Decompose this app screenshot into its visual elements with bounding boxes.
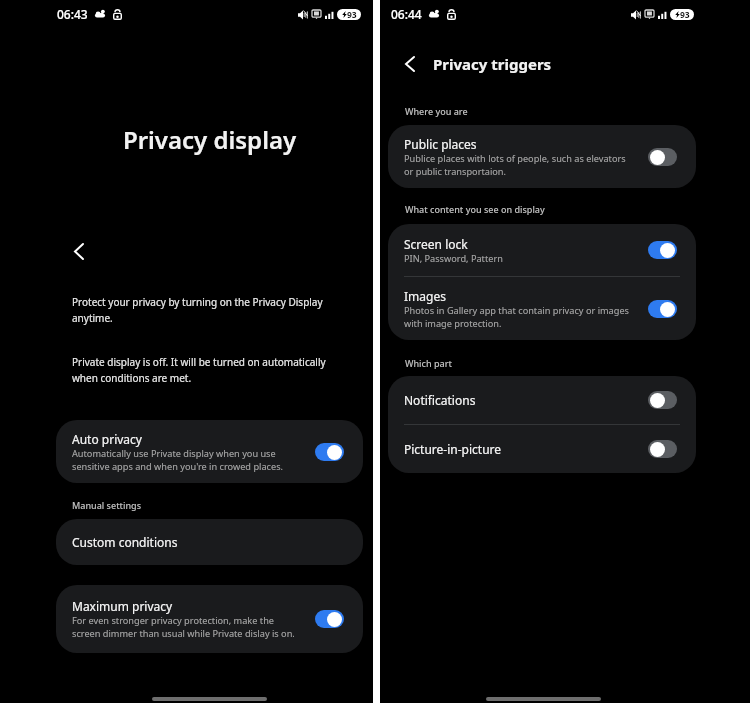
button[interactable]: Switch on [315,610,344,628]
button[interactable]: Screen lock [388,224,696,276]
staticText: 93 [347,9,357,20]
staticText: Publice places with lots of people, such… [404,152,630,178]
button[interactable]: Switch off [648,440,677,458]
staticText: Which part [405,357,452,369]
staticText: Auto privacy [72,431,142,447]
staticText: What content you see on display [405,203,545,215]
button[interactable]: Switch on [648,300,677,318]
staticText: Public places [404,136,477,152]
staticText: Notifications [404,392,476,408]
staticText: Privacy display [46,123,373,156]
staticText: Custom conditions [72,534,178,550]
staticText: Where you are [405,105,468,117]
button[interactable]: Back [67,239,91,263]
staticText: Automatically use Private display when y… [72,447,298,473]
button[interactable]: Back [398,52,422,76]
button[interactable]: Switch off [648,148,677,166]
button[interactable]: Notifications [388,376,696,424]
staticText: Manual settings [72,499,142,511]
button[interactable]: Picture-in-picture [388,425,696,473]
button[interactable]: Custom conditions [56,519,363,565]
staticText: Picture-in-picture [404,441,502,457]
staticText: 06:43 [57,6,88,22]
staticText: PIN, Password, Pattern [404,252,630,265]
staticText: Private display is off. It will be turne… [72,355,334,384]
button[interactable]: Maximum privacy [56,585,363,653]
staticText: Maximum privacy [72,598,173,614]
staticText: 06:44 [391,6,422,22]
button[interactable]: Switch on [648,241,677,259]
button[interactable]: Switch on [315,443,344,461]
staticText: Screen lock [404,236,468,252]
staticText: 93 [680,9,690,20]
staticText: Protect your privacy by turning on the P… [72,295,330,324]
button[interactable]: Auto privacy [56,420,363,483]
staticText: Images [404,288,446,304]
staticText: Photos in Gallery app that contain priva… [404,304,638,330]
button[interactable]: Images [388,277,696,340]
staticText: Privacy triggers [433,54,552,74]
button[interactable]: Public places [388,125,696,188]
staticText: For even stronger privacy protection, ma… [72,614,300,640]
button[interactable]: Switch off [648,391,677,409]
